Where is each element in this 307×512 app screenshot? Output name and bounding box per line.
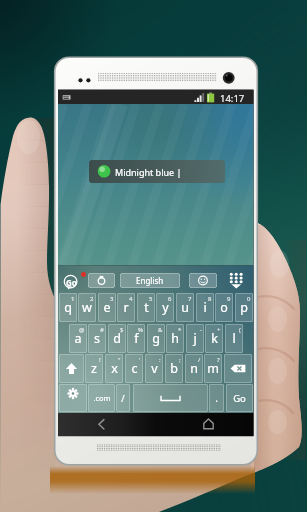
staticText: 8 — [208, 295, 212, 303]
staticText: 5 — [149, 295, 153, 303]
button[interactable]: o — [215, 293, 233, 322]
staticText: i — [203, 299, 207, 316]
button[interactable]: r — [117, 293, 135, 322]
staticText: c — [131, 360, 138, 377]
button[interactable]: q — [59, 293, 77, 322]
staticText: 3 — [110, 295, 114, 303]
button[interactable]: j — [186, 324, 204, 353]
staticText: 6 — [168, 295, 172, 303]
staticText: ? — [217, 356, 220, 364]
staticText: e — [103, 299, 111, 316]
button[interactable]: Clipboard — [88, 273, 115, 288]
button[interactable]: d — [108, 324, 126, 353]
staticText: u — [181, 299, 189, 316]
button[interactable]: Emoji — [189, 273, 217, 288]
button[interactable]: . — [209, 384, 224, 412]
staticText: f — [134, 330, 139, 347]
staticText: 1 — [71, 295, 75, 303]
staticText: ?123 — [70, 409, 87, 412]
button[interactable]: n — [185, 354, 203, 383]
button[interactable]: c — [125, 354, 143, 383]
staticText: m — [207, 360, 219, 377]
staticText: p — [240, 299, 248, 316]
staticText: t — [144, 299, 149, 316]
button[interactable] — [133, 384, 208, 412]
staticText: r — [123, 299, 129, 316]
staticText: + — [217, 326, 221, 334]
staticText: & — [158, 326, 163, 334]
staticText: 14:17 — [220, 92, 245, 105]
button[interactable]: Number keypad — [229, 272, 243, 287]
staticText: - — [200, 326, 202, 334]
button[interactable]: p — [235, 293, 253, 322]
staticText: b — [170, 360, 178, 377]
staticText: English — [136, 275, 164, 286]
staticText: * — [178, 326, 182, 334]
button[interactable] — [224, 354, 252, 383]
staticText: k — [211, 330, 218, 347]
staticText: # — [100, 326, 104, 334]
staticText: $ — [120, 326, 124, 334]
button[interactable]: GO Keyboard menu — [64, 275, 77, 288]
button[interactable]: s — [88, 324, 106, 353]
staticText: ; — [179, 356, 181, 364]
staticText: Go — [66, 277, 77, 288]
staticText: 2 — [90, 295, 94, 303]
staticText: .com — [93, 393, 111, 403]
staticText: % — [138, 326, 143, 334]
staticText: g — [152, 330, 160, 347]
staticText: " — [118, 356, 121, 364]
button[interactable]: w — [78, 293, 96, 322]
staticText: @ — [79, 326, 85, 334]
staticText: l — [232, 330, 236, 347]
button[interactable]: b — [165, 354, 183, 383]
staticText: n — [190, 360, 198, 377]
staticText: / — [198, 356, 201, 364]
staticText: ! — [99, 356, 101, 364]
staticText: o — [220, 299, 228, 316]
button[interactable]: x — [105, 354, 123, 383]
staticText: a — [74, 330, 82, 347]
staticText: h — [171, 330, 179, 347]
staticText: 4 — [129, 295, 133, 303]
button[interactable]: e — [98, 293, 116, 322]
button[interactable]: f — [127, 324, 145, 353]
staticText: . — [215, 391, 218, 405]
button[interactable]: English — [120, 273, 180, 288]
button[interactable]: Go — [226, 384, 253, 412]
staticText: ( — [239, 326, 241, 334]
button[interactable]: i — [196, 293, 214, 322]
button[interactable]: .com — [88, 384, 115, 412]
staticText: s — [94, 330, 100, 347]
button[interactable]: a — [69, 324, 87, 353]
staticText: Go — [233, 392, 246, 405]
button[interactable]: k — [205, 324, 223, 353]
button[interactable]: / — [116, 384, 130, 412]
staticText: d — [113, 330, 121, 347]
button[interactable]: m — [204, 354, 222, 383]
button[interactable]: z — [85, 354, 103, 383]
staticText: : — [159, 356, 161, 364]
button[interactable]: l — [225, 324, 243, 353]
staticText: y — [162, 299, 169, 316]
staticText: w — [82, 299, 92, 316]
button[interactable]: ?123 — [59, 384, 87, 412]
button[interactable]: t — [137, 293, 155, 322]
staticText: 7 — [188, 295, 192, 303]
button[interactable] — [59, 354, 84, 383]
staticText: v — [151, 360, 158, 377]
staticText: 0 — [247, 295, 251, 303]
staticText: x — [111, 360, 118, 377]
staticText: / — [121, 392, 125, 404]
button[interactable]: v — [145, 354, 163, 383]
staticText: Midnight blue | — [115, 166, 182, 178]
staticText: q — [64, 299, 72, 316]
button[interactable]: h — [166, 324, 184, 353]
staticText: z — [91, 360, 97, 377]
button[interactable]: g — [147, 324, 165, 353]
staticText: j — [193, 330, 197, 347]
button[interactable]: y — [156, 293, 174, 322]
button[interactable]: u — [176, 293, 194, 322]
button[interactable]: Midnight blue | — [89, 160, 225, 183]
staticText: 9 — [227, 295, 231, 303]
